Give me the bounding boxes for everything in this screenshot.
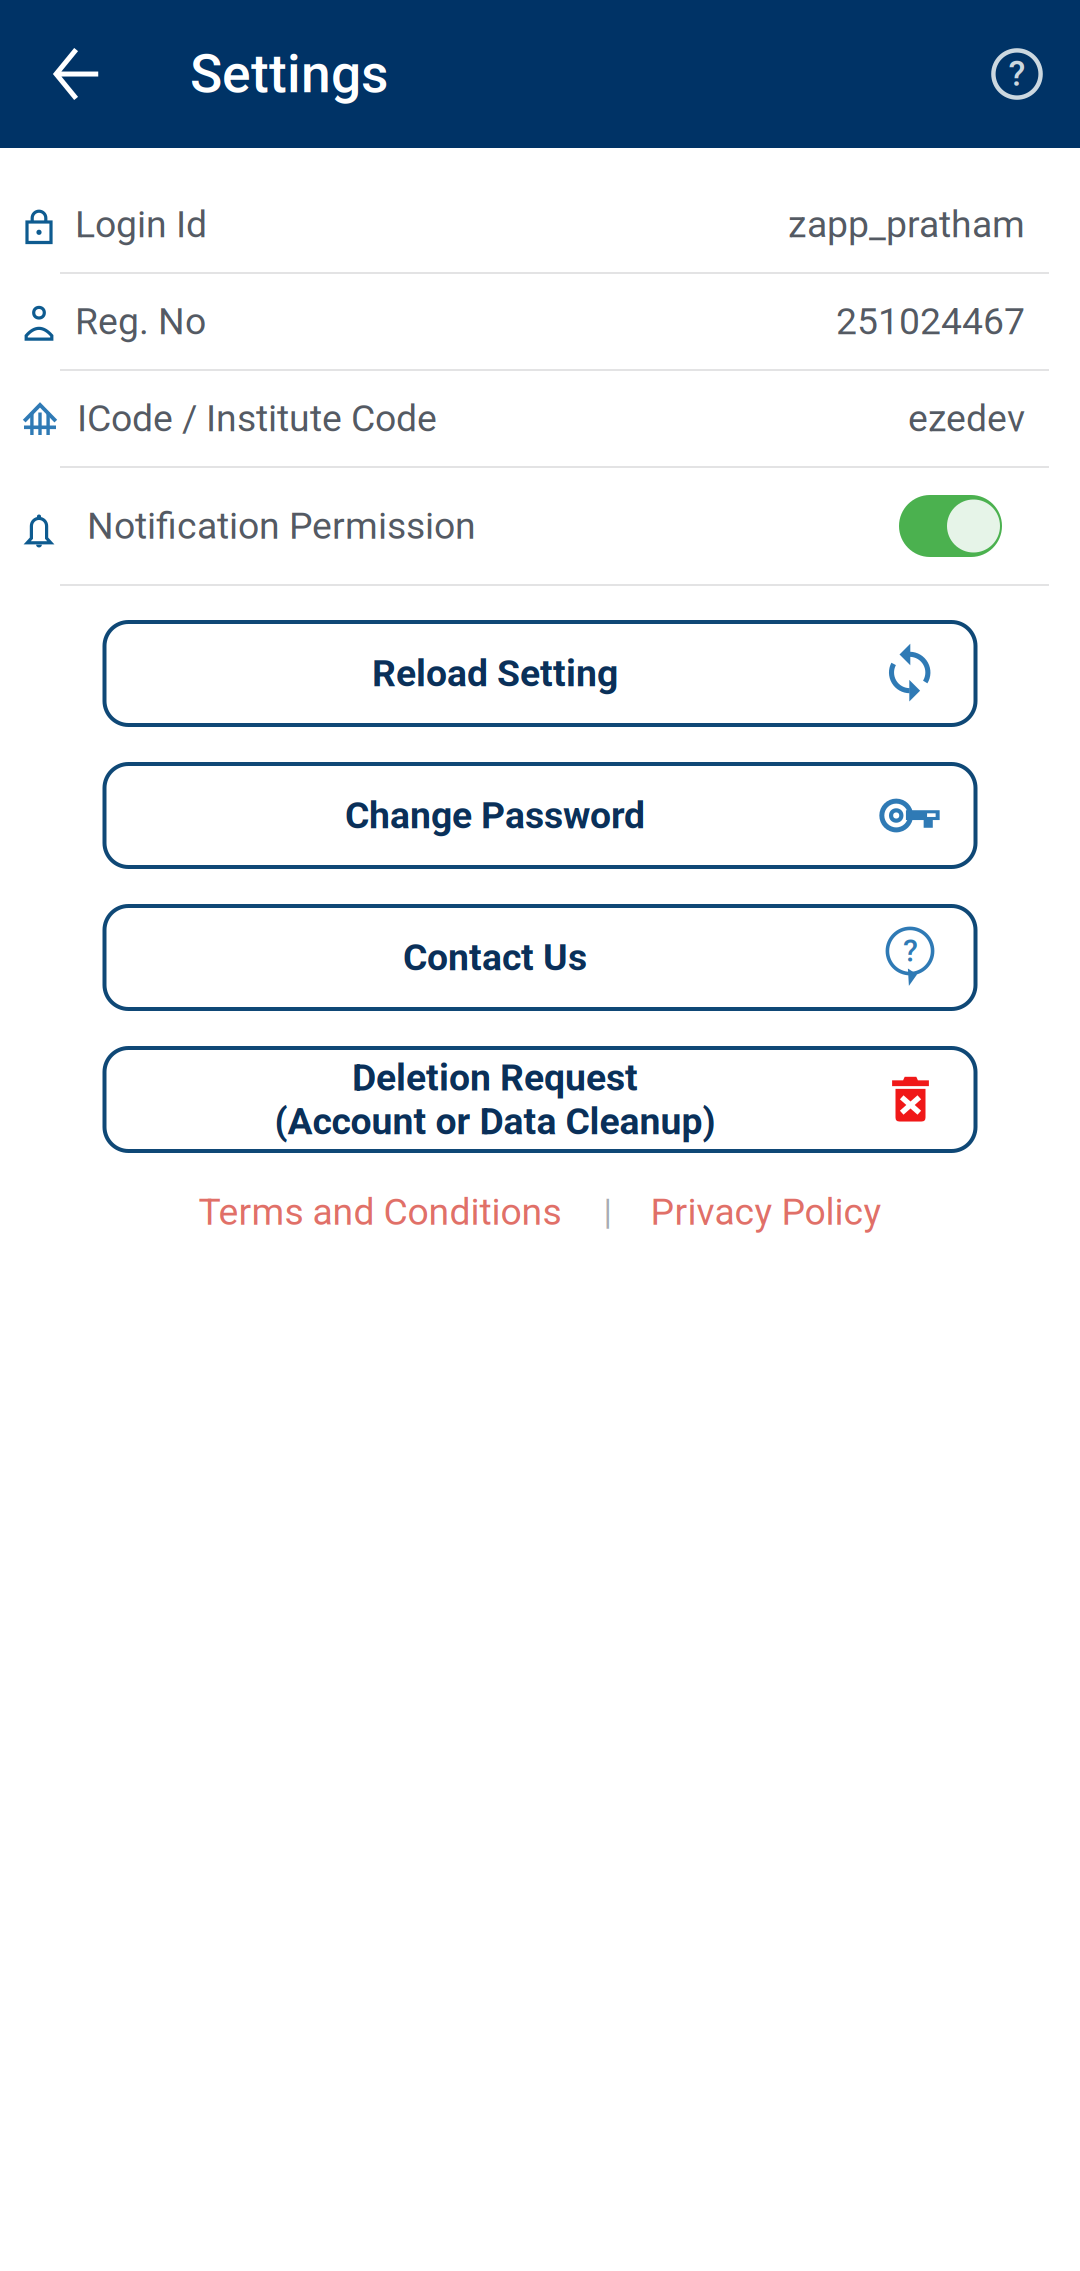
staticText: ICode / Institute Code bbox=[77, 397, 437, 440]
staticText: Privacy Policy bbox=[650, 1190, 881, 1234]
staticText: ? bbox=[903, 933, 918, 969]
button[interactable]: Help bbox=[977, 34, 1057, 114]
staticText: Contact Us bbox=[403, 936, 587, 979]
button[interactable]: Contact Us bbox=[104, 906, 975, 1009]
button[interactable]: Notification Permission bbox=[899, 495, 1002, 557]
staticText: Notification Permission bbox=[87, 504, 476, 548]
button[interactable]: Change Password bbox=[104, 764, 975, 867]
staticText: zapp_pratham bbox=[788, 203, 1025, 246]
staticText: Terms and Conditions bbox=[198, 1190, 561, 1234]
staticText: Settings bbox=[190, 43, 388, 105]
staticText: Deletion Request bbox=[352, 1056, 638, 1099]
staticText: Reg. No bbox=[75, 300, 206, 343]
button[interactable]: Deletion Request bbox=[104, 1048, 975, 1151]
button[interactable]: Privacy Policy bbox=[650, 1190, 881, 1234]
button[interactable]: Reload Setting bbox=[104, 622, 975, 725]
staticText: | bbox=[603, 1192, 611, 1232]
staticText: (Account or Data Cleanup) bbox=[274, 1099, 715, 1143]
button[interactable]: Back bbox=[39, 34, 119, 114]
staticText: Change Password bbox=[345, 794, 645, 837]
staticText: Login Id bbox=[75, 203, 207, 246]
staticText: ? bbox=[1008, 54, 1025, 94]
staticText: 251024467 bbox=[836, 300, 1025, 343]
button[interactable]: Terms and Conditions bbox=[198, 1190, 561, 1234]
staticText: Reload Setting bbox=[372, 652, 618, 695]
staticText: ezedev bbox=[908, 397, 1025, 440]
